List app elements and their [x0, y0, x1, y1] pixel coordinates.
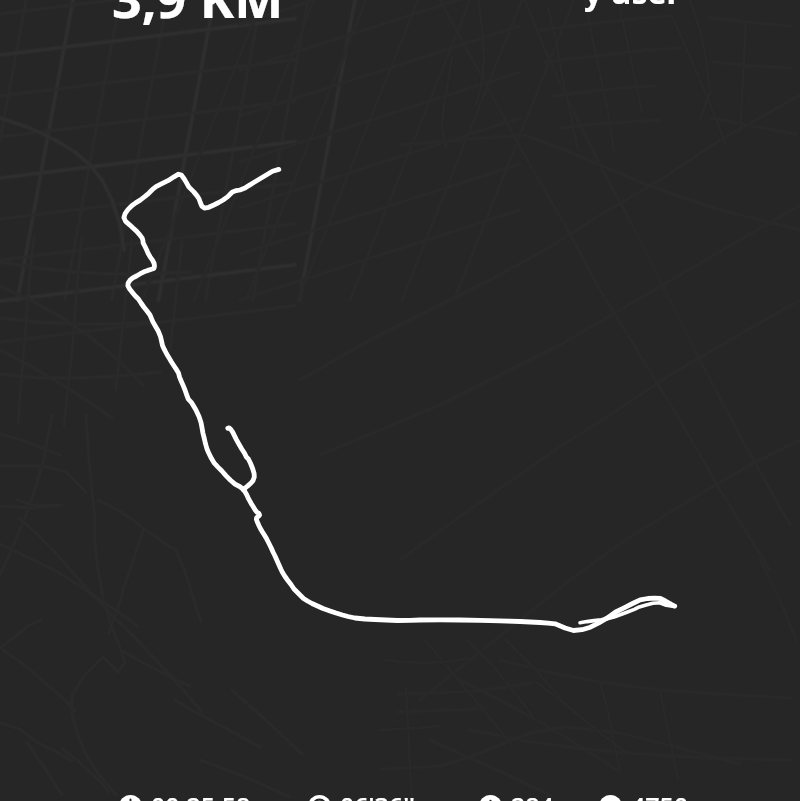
staticText: 3,9 KM [112, 0, 284, 33]
button[interactable]: Route map [0, 0, 800, 801]
button[interactable]: Duration [119, 789, 251, 801]
other: Average pace [308, 795, 331, 801]
other: Duration [119, 795, 142, 801]
button[interactable]: y user [584, 0, 681, 14]
other: Steps [599, 795, 622, 801]
button[interactable]: Calories [479, 789, 554, 801]
staticText: 284 [511, 789, 554, 801]
button[interactable]: 3,9 KM [112, 0, 284, 33]
other: Calories [479, 795, 502, 801]
staticText: 4750 [631, 789, 689, 801]
staticText: 06'36'' [340, 789, 415, 801]
button[interactable]: Steps [599, 789, 689, 801]
staticText: 00:25:58 [151, 789, 251, 801]
staticText: y user [584, 0, 681, 14]
button[interactable]: Average pace [308, 789, 415, 801]
